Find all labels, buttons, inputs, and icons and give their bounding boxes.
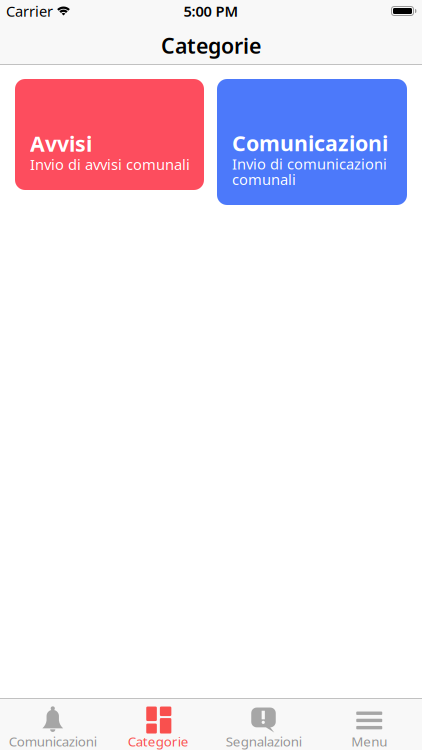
staticText: Menu [351, 732, 387, 750]
staticText: Carrier [6, 1, 53, 21]
button[interactable]: Comunicazioni [0, 698, 105, 750]
staticText: Segnalazioni [226, 732, 302, 750]
button[interactable]: Avvisi [15, 79, 204, 190]
staticText: Categorie [128, 732, 189, 750]
staticText: Invio di avvisi comunali [30, 154, 190, 174]
button[interactable]: Categorie [105, 698, 211, 750]
staticText: comunali [232, 169, 296, 189]
staticText: 5:00 PM [183, 1, 238, 21]
button[interactable]: Segnalazioni [211, 698, 316, 750]
staticText: Comunicazioni [9, 732, 97, 750]
staticText: Avvisi [30, 129, 92, 157]
staticText: Categorie [161, 31, 261, 60]
button[interactable]: Menu [316, 698, 422, 750]
staticText: Comunicazioni [232, 129, 388, 157]
staticText: Invio di comunicazioni [232, 154, 387, 173]
button[interactable]: Comunicazioni [217, 79, 407, 205]
